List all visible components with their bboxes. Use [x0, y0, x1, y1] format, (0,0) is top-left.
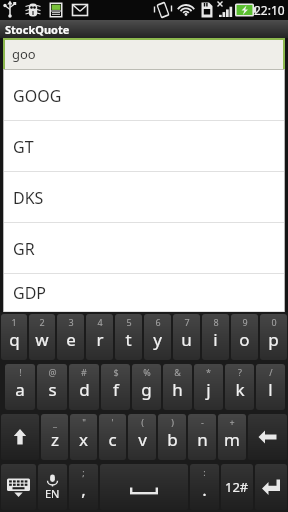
staticText: q	[9, 328, 20, 351]
button[interactable]: +	[218, 414, 246, 460]
staticText: %	[143, 366, 151, 378]
staticText: goo	[12, 45, 36, 63]
button[interactable]: 4	[86, 314, 113, 360]
staticText: 9	[242, 316, 248, 328]
staticText: 5	[126, 316, 132, 328]
staticText: GR	[13, 238, 35, 260]
button[interactable]: 5	[115, 314, 142, 360]
button[interactable]: 9	[231, 314, 258, 360]
button[interactable]: GR	[3, 223, 285, 274]
staticText: c	[108, 428, 117, 451]
staticText: 22:10	[254, 2, 285, 18]
button[interactable]: 1	[1, 314, 27, 360]
staticText: GT	[13, 136, 34, 158]
button[interactable]: Space	[100, 464, 188, 510]
staticText: @	[48, 366, 57, 378]
button[interactable]: 3	[57, 314, 84, 360]
staticText: )	[171, 416, 174, 428]
staticText: 0	[271, 316, 277, 328]
staticText: u	[181, 328, 192, 351]
staticText: ,	[81, 478, 86, 501]
staticText: 7	[184, 316, 190, 328]
button[interactable]: ?	[225, 364, 254, 410]
button[interactable]: @	[37, 364, 67, 410]
staticText: !	[19, 366, 22, 378]
staticText: '	[111, 416, 114, 428]
button[interactable]: 2	[29, 314, 55, 360]
button[interactable]: 8	[202, 314, 229, 360]
staticText: _	[53, 416, 57, 428]
staticText: &	[174, 366, 181, 378]
button[interactable]: GOOG	[3, 70, 285, 121]
staticText: l	[268, 378, 273, 401]
staticText: y	[153, 328, 162, 351]
button[interactable]: Backspace	[248, 414, 287, 460]
button[interactable]: (	[128, 414, 156, 460]
staticText: #	[81, 366, 87, 378]
staticText: GDP	[13, 282, 47, 304]
staticText: 3	[68, 316, 74, 328]
button[interactable]: $	[101, 364, 130, 410]
button[interactable]: :	[190, 464, 219, 510]
staticText: ;	[82, 466, 85, 478]
staticText: :	[203, 466, 206, 478]
button[interactable]: Hide keyboard	[1, 464, 36, 510]
button[interactable]: GDP	[3, 274, 285, 312]
button[interactable]: !	[5, 364, 35, 410]
staticText: "	[82, 416, 86, 428]
staticText: 1	[11, 316, 17, 328]
button[interactable]: &	[163, 364, 192, 410]
staticText: m	[224, 428, 240, 451]
staticText: g	[141, 378, 152, 401]
staticText: t	[125, 328, 132, 351]
staticText: 6	[155, 316, 161, 328]
staticText: h	[172, 378, 183, 401]
button[interactable]: GT	[3, 121, 285, 172]
staticText: (	[141, 416, 144, 428]
staticText: p	[268, 328, 279, 351]
staticText: z	[51, 428, 59, 451]
button[interactable]: 7	[173, 314, 200, 360]
staticText: v	[138, 428, 147, 451]
staticText: EN	[45, 486, 60, 501]
staticText: DKS	[13, 187, 44, 209]
staticText: ?	[238, 366, 242, 378]
staticText: *	[206, 366, 211, 378]
staticText: StockQuote	[5, 22, 70, 37]
staticText: o	[239, 328, 250, 351]
button[interactable]: _	[41, 414, 68, 460]
button[interactable]: "	[70, 414, 97, 460]
staticText: a	[15, 378, 25, 401]
staticText: $	[113, 366, 119, 378]
button[interactable]: Shift	[1, 414, 39, 460]
button[interactable]: /	[256, 364, 285, 410]
staticText: 4	[97, 316, 103, 328]
staticText: x	[79, 428, 88, 451]
button[interactable]: -	[188, 414, 216, 460]
staticText: -	[201, 416, 204, 428]
staticText: e	[66, 328, 76, 351]
button[interactable]: Enter	[255, 464, 287, 510]
button[interactable]: 12#	[221, 464, 253, 510]
staticText: /	[269, 366, 273, 378]
staticText: r	[96, 328, 104, 351]
button[interactable]: DKS	[3, 172, 285, 223]
staticText: 8	[213, 316, 219, 328]
staticText: d	[79, 378, 90, 401]
staticText: s	[48, 378, 57, 401]
staticText: w	[35, 328, 49, 351]
button[interactable]: )	[158, 414, 186, 460]
staticText: +	[229, 416, 235, 428]
staticText: GOOG	[13, 85, 62, 107]
button[interactable]: ;	[69, 464, 98, 510]
button[interactable]: %	[132, 364, 161, 410]
staticText: n	[197, 428, 208, 451]
button[interactable]: '	[99, 414, 126, 460]
button[interactable]: *	[194, 364, 223, 410]
staticText: .	[202, 478, 207, 501]
button[interactable]: goo	[3, 38, 285, 70]
button[interactable]: 0	[260, 314, 287, 360]
button[interactable]: 6	[144, 314, 171, 360]
button[interactable]: EN	[38, 464, 67, 510]
button[interactable]: #	[69, 364, 99, 410]
